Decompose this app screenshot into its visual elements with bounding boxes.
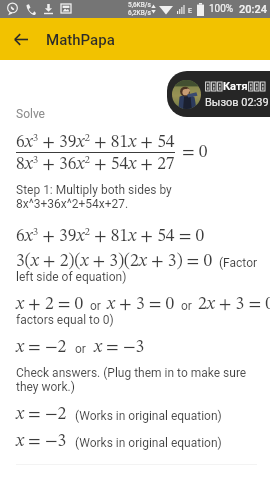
staticText: x + 2 = 0	[16, 296, 84, 314]
staticText: 6x3 + 39x2 + 81x + 54	[16, 133, 175, 152]
staticText: or	[90, 299, 101, 313]
staticText: 20:24	[239, 3, 267, 16]
staticText: (Works in original equation)	[75, 409, 222, 423]
staticText: factors equal to 0)	[16, 313, 114, 327]
staticText: 2x + 3 = 0	[198, 296, 270, 314]
staticText: Check answers. (Plug them in to make sur…	[16, 366, 248, 394]
staticText: (Works in original equation)	[75, 436, 222, 450]
staticText: = 0	[182, 144, 208, 162]
button[interactable]: Back	[3, 21, 39, 57]
button[interactable]: Катя	[167, 71, 270, 117]
staticText: Solve	[16, 107, 45, 121]
staticText: x = −3	[94, 339, 145, 357]
staticText: left side of equation)	[16, 270, 127, 284]
staticText: 3(x + 2)(x + 3)(2x + 3) = 0	[16, 253, 213, 271]
staticText: or	[75, 342, 86, 356]
staticText: 5,6KB/s 6,2KB/s	[128, 1, 151, 17]
staticText: 8x3 + 36x2 + 54x + 27	[16, 155, 175, 174]
staticText: E	[188, 7, 192, 15]
staticText: x + 3 = 0	[107, 296, 175, 314]
staticText: (Factor	[219, 256, 258, 270]
staticText: Катя	[223, 80, 248, 93]
staticText: Вызов 02:39	[205, 96, 269, 109]
staticText: 6x3 + 39x2 + 81x + 54 = 0	[16, 227, 205, 246]
staticText: Step 1: Multiply both sides by 8x^3+36x^…	[16, 183, 191, 211]
staticText: x = −3	[16, 433, 67, 451]
staticText: MathPapa	[46, 31, 115, 49]
staticText: 100%	[209, 3, 234, 15]
staticText: x = −2	[16, 339, 67, 357]
staticText: x = −2	[16, 406, 67, 424]
staticText: or	[181, 299, 192, 313]
